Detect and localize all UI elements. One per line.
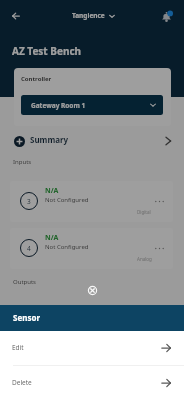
- staticText: Delete: [12, 378, 32, 387]
- button[interactable]: Close: [87, 285, 98, 296]
- button[interactable]: Sensor: [0, 305, 184, 331]
- button[interactable]: Gateway Room 1: [21, 95, 163, 115]
- staticText: AZ Test Bench: [12, 44, 82, 58]
- staticText: Edit: [12, 343, 24, 352]
- button[interactable]: Edit: [0, 331, 184, 365]
- button[interactable]: Tangience: [68, 8, 119, 23]
- button[interactable]: 3: [10, 181, 173, 222]
- staticText: Inputs: [13, 158, 32, 166]
- button[interactable]: Notifications: [158, 8, 175, 25]
- staticText: Not Configured: [45, 243, 89, 251]
- staticText: Summary: [30, 134, 69, 145]
- staticText: 3: [27, 197, 31, 206]
- button[interactable]: Back: [8, 8, 24, 24]
- other: Delete: [161, 378, 171, 388]
- staticText: Not Configured: [45, 196, 89, 204]
- staticText: N/A: [45, 233, 59, 243]
- staticText: Gateway Room 1: [31, 101, 86, 110]
- staticText: Analog: [137, 256, 152, 262]
- staticText: Outputs: [13, 278, 36, 286]
- other: Edit: [161, 343, 171, 353]
- staticText: 4: [27, 244, 31, 253]
- other: More options: [155, 197, 164, 206]
- staticText: N/A: [45, 186, 59, 196]
- staticText: Controller: [21, 75, 52, 83]
- staticText: Tangience: [72, 11, 105, 20]
- staticText: Digital: [137, 209, 151, 215]
- button[interactable]: Summary: [0, 131, 184, 152]
- staticText: Sensor: [13, 312, 40, 323]
- button[interactable]: 4: [10, 228, 173, 269]
- other: More options: [155, 244, 164, 253]
- button[interactable]: Delete: [0, 366, 184, 400]
